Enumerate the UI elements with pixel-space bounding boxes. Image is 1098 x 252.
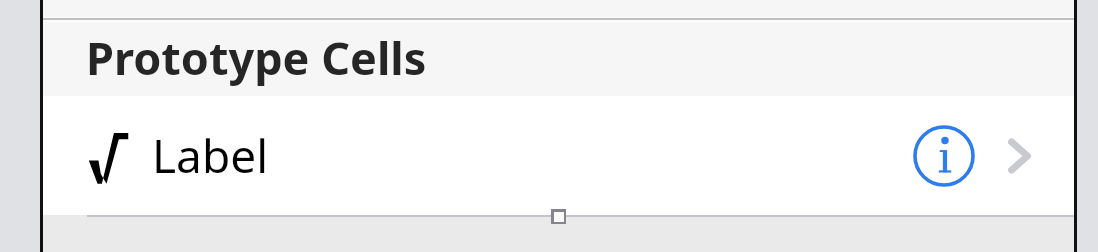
button[interactable]: Label — [43, 96, 1074, 215]
staticText: Prototype Cells — [86, 27, 427, 88]
button[interactable]: Resize handle — [551, 209, 566, 224]
staticText: Label — [152, 124, 269, 187]
button[interactable]: Disclosure indicator — [997, 126, 1041, 186]
button[interactable]: Info — [913, 125, 975, 187]
